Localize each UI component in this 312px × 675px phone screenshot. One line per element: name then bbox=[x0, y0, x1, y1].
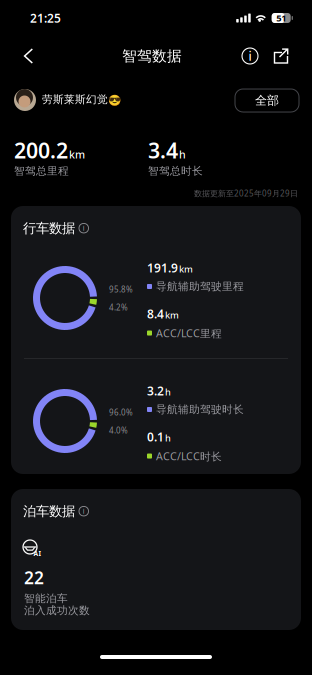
staticText: i bbox=[83, 224, 85, 233]
button[interactable]: 全部 bbox=[235, 89, 299, 112]
staticText: 全部 bbox=[255, 93, 279, 108]
staticText: i bbox=[248, 48, 251, 64]
button[interactable]: 返回 bbox=[12, 37, 47, 75]
staticText: km bbox=[165, 309, 179, 321]
staticText: 智驾总时长 bbox=[148, 164, 203, 177]
staticText: 4.2% bbox=[109, 302, 128, 313]
staticText: 96.0% bbox=[109, 407, 133, 418]
staticText: 智驾数据 bbox=[122, 47, 182, 65]
staticText: 22 bbox=[24, 566, 44, 589]
staticText: 21:25 bbox=[30, 10, 61, 26]
staticText: 智驾总里程 bbox=[14, 164, 69, 177]
staticText: 0.1 bbox=[147, 429, 164, 445]
staticText: 劳斯莱斯幻觉😎 bbox=[42, 93, 121, 106]
staticText: 8.4 bbox=[147, 306, 164, 322]
staticText: 导航辅助驾驶里程 bbox=[156, 280, 244, 293]
staticText: 导航辅助驾驶时长 bbox=[156, 403, 244, 416]
staticText: ACC/LCC里程 bbox=[156, 326, 222, 340]
staticText: 泊车数据 bbox=[23, 503, 75, 519]
staticText: 191.9 bbox=[147, 260, 178, 276]
staticText: h bbox=[165, 432, 171, 444]
staticText: 95.8% bbox=[109, 284, 133, 295]
staticText: 行车数据 bbox=[23, 220, 75, 236]
staticText: 泊入成功次数 bbox=[24, 604, 90, 617]
staticText: 200.2 bbox=[14, 136, 68, 164]
staticText: 3.4 bbox=[148, 136, 178, 164]
staticText: km bbox=[69, 147, 85, 161]
staticText: AI bbox=[33, 549, 41, 558]
button[interactable]: 分享 bbox=[266, 41, 296, 71]
staticText: km bbox=[179, 263, 193, 275]
staticText: 3.2 bbox=[147, 383, 164, 399]
button[interactable]: 信息 bbox=[234, 41, 266, 71]
staticText: h bbox=[179, 147, 186, 161]
staticText: 数据更新至2025年09月29日 bbox=[194, 188, 298, 199]
staticText: ACC/LCC时长 bbox=[156, 449, 222, 463]
staticText: 智能泊车 bbox=[24, 592, 68, 605]
staticText: i bbox=[83, 507, 85, 516]
staticText: h bbox=[165, 386, 171, 398]
staticText: 4.0% bbox=[109, 425, 128, 436]
staticText: 51 bbox=[276, 12, 286, 24]
